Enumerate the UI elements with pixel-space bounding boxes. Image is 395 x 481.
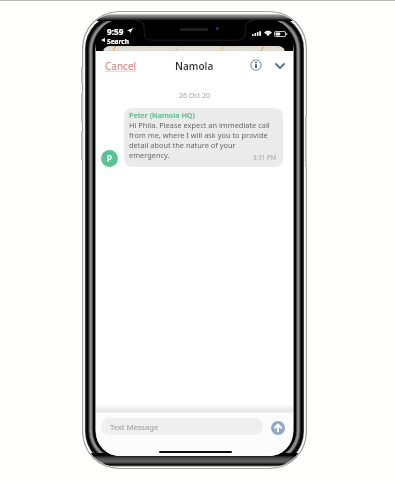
staticText: 9:59: [107, 26, 124, 37]
staticText: Cancel: [105, 59, 137, 73]
staticText: Text Message: [110, 422, 159, 432]
button[interactable]: Text Message: [101, 418, 263, 435]
button[interactable]: Cancel: [100, 55, 142, 77]
staticText: Peter (Namola HQ): [129, 110, 195, 120]
button[interactable]: Send: [269, 419, 287, 437]
button[interactable]: Peter (Namola HQ): [124, 108, 283, 167]
staticText: Namola: [175, 59, 214, 73]
button[interactable]: Collapse: [271, 57, 289, 75]
staticText: 3:31 PM: [253, 153, 277, 161]
staticText: Search: [107, 37, 130, 46]
staticText: Hi Phila. Please expect an immediate cal…: [129, 120, 270, 160]
button[interactable]: Info: [247, 56, 265, 74]
staticText: 26 Oct 20: [96, 91, 293, 101]
staticText: P: [107, 153, 112, 164]
